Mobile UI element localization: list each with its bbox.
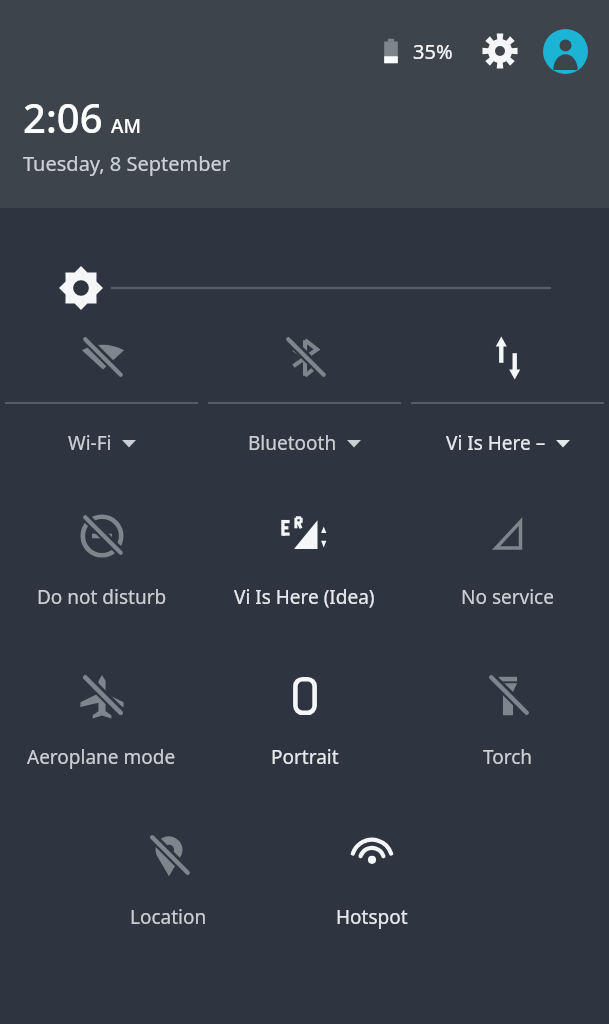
button[interactable]: Torch [406,656,609,816]
button[interactable]: Location [0,816,203,976]
button[interactable]: Vi Is Here – [406,320,609,496]
button[interactable]: Wi-Fi [0,320,203,496]
staticText: Tuesday, 8 September [23,150,231,177]
staticText: Wi-Fi [68,430,112,456]
staticText: Torch [483,744,533,770]
staticText: Hotspot [336,904,408,930]
staticText: Do not disturb [37,584,167,610]
button[interactable]: Hotspot [203,816,406,976]
staticText: AM [111,113,141,139]
button[interactable]: Aeroplane mode [0,656,203,816]
staticText: Portrait [271,744,339,770]
staticText: Vi Is Here – [446,430,546,456]
staticText: Aeroplane mode [27,744,176,770]
staticText: 35% [413,38,453,65]
button[interactable]: No service [406,496,609,656]
button[interactable]: Battery 35 percent [371,31,411,71]
button[interactable]: Bluetooth [203,320,406,496]
staticText: Vi Is Here (Idea) [234,584,375,610]
button[interactable]: User profile [541,27,589,75]
button[interactable]: Do not disturb [0,496,203,656]
staticText: Location [130,904,207,930]
button[interactable]: Settings [477,28,523,74]
staticText: 2:06 [23,90,103,144]
staticText: No service [461,584,554,610]
button[interactable]: Portrait [203,656,406,816]
staticText: Bluetooth [248,430,337,456]
button[interactable]: Vi Is Here (Idea) [203,496,406,656]
button[interactable]: Brightness slider [0,208,609,320]
